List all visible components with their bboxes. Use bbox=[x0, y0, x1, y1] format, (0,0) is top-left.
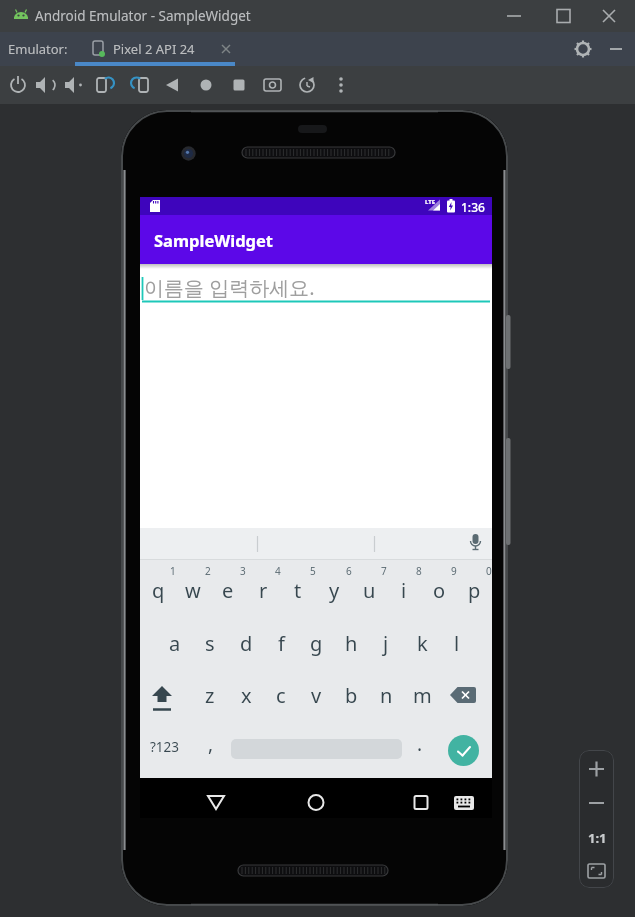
button[interactable] bbox=[260, 66, 292, 104]
staticText: u bbox=[363, 577, 376, 604]
button[interactable]: g bbox=[299, 628, 333, 658]
staticText: m bbox=[413, 682, 432, 709]
button[interactable] bbox=[448, 735, 479, 766]
button[interactable] bbox=[579, 855, 614, 888]
staticText: k bbox=[417, 630, 428, 657]
button[interactable]: d bbox=[229, 628, 263, 658]
button[interactable]: k bbox=[405, 628, 439, 658]
staticText: s bbox=[205, 630, 215, 657]
button[interactable] bbox=[200, 787, 232, 815]
staticText: q bbox=[152, 577, 165, 604]
staticText: 6 bbox=[346, 564, 352, 578]
staticText: 3 bbox=[240, 564, 246, 578]
button[interactable] bbox=[460, 528, 492, 560]
button[interactable]: p bbox=[457, 575, 491, 605]
staticText: f bbox=[278, 630, 285, 657]
button[interactable] bbox=[579, 750, 614, 785]
staticText: Emulator: bbox=[8, 40, 68, 58]
button[interactable]: m bbox=[405, 680, 439, 710]
button[interactable]: w bbox=[176, 575, 210, 605]
button[interactable]: z bbox=[193, 680, 227, 710]
button[interactable]: x bbox=[229, 680, 263, 710]
button[interactable]: f bbox=[264, 628, 298, 658]
staticText: r bbox=[259, 577, 268, 604]
button[interactable] bbox=[449, 686, 489, 712]
staticText: 이름을 입력하세요. bbox=[144, 274, 315, 301]
button[interactable] bbox=[300, 787, 332, 815]
staticText: 9 bbox=[451, 564, 457, 578]
staticText: 0 bbox=[486, 564, 492, 578]
button[interactable] bbox=[570, 32, 635, 66]
button[interactable]: Pixel 2 API 24 bbox=[75, 32, 235, 66]
button[interactable]: s bbox=[193, 628, 227, 658]
button[interactable]: , bbox=[194, 729, 228, 759]
staticText: e bbox=[222, 577, 234, 604]
staticText: LTE bbox=[425, 198, 436, 206]
staticText: j bbox=[383, 630, 389, 657]
button[interactable]: 이름을 입력하세요. bbox=[140, 264, 492, 528]
button[interactable]: i bbox=[387, 575, 421, 605]
button[interactable]: y bbox=[317, 575, 351, 605]
button[interactable] bbox=[36, 66, 68, 104]
staticText: h bbox=[345, 630, 358, 657]
button[interactable]: j bbox=[369, 628, 403, 658]
button[interactable] bbox=[132, 66, 164, 104]
button[interactable] bbox=[100, 66, 132, 104]
button[interactable]: n bbox=[369, 680, 403, 710]
staticText: c bbox=[276, 682, 286, 709]
button[interactable]: c bbox=[264, 680, 298, 710]
button[interactable] bbox=[228, 66, 260, 104]
staticText: v bbox=[311, 682, 322, 709]
staticText: t bbox=[294, 577, 302, 604]
button[interactable]: t bbox=[281, 575, 315, 605]
staticText: d bbox=[240, 630, 253, 657]
button[interactable] bbox=[164, 66, 196, 104]
button[interactable]: a bbox=[158, 628, 192, 658]
button[interactable] bbox=[292, 66, 324, 104]
button[interactable] bbox=[448, 787, 480, 815]
button[interactable] bbox=[480, 0, 635, 32]
button[interactable]: e bbox=[211, 575, 245, 605]
staticText: Pixel 2 API 24 bbox=[113, 40, 195, 58]
button[interactable] bbox=[579, 820, 614, 855]
staticText: 1:1 bbox=[588, 829, 607, 847]
button[interactable]: v bbox=[299, 680, 333, 710]
button[interactable]: ?123 bbox=[145, 734, 185, 760]
button[interactable] bbox=[579, 785, 614, 820]
button[interactable]: l bbox=[440, 628, 474, 658]
staticText: 1 bbox=[170, 564, 176, 578]
staticText: , bbox=[208, 731, 214, 757]
staticText: Android Emulator - SampleWidget bbox=[35, 7, 251, 25]
staticText: 4 bbox=[275, 564, 281, 578]
button[interactable] bbox=[68, 66, 100, 104]
staticText: . bbox=[417, 731, 423, 757]
staticText: w bbox=[185, 577, 201, 604]
staticText: x bbox=[241, 682, 252, 709]
button[interactable] bbox=[324, 66, 356, 104]
staticText: 1:36 bbox=[461, 199, 485, 215]
button[interactable] bbox=[148, 684, 178, 716]
staticText: g bbox=[310, 630, 323, 657]
staticText: z bbox=[205, 682, 215, 709]
staticText: b bbox=[345, 682, 358, 709]
button[interactable] bbox=[196, 66, 228, 104]
button[interactable]: r bbox=[246, 575, 280, 605]
button[interactable]: b bbox=[334, 680, 368, 710]
staticText: l bbox=[454, 630, 460, 657]
button[interactable]: . bbox=[403, 729, 437, 759]
staticText: 8 bbox=[416, 564, 422, 578]
button[interactable] bbox=[4, 66, 36, 104]
staticText: ?123 bbox=[150, 738, 180, 756]
staticText: 5 bbox=[310, 564, 316, 578]
button[interactable]: h bbox=[334, 628, 368, 658]
button[interactable]: o bbox=[422, 575, 456, 605]
button[interactable] bbox=[405, 787, 437, 815]
staticText: 7 bbox=[381, 564, 387, 578]
button[interactable]: u bbox=[352, 575, 386, 605]
staticText: a bbox=[169, 630, 181, 657]
staticText: i bbox=[401, 577, 407, 604]
staticText: 2 bbox=[205, 564, 211, 578]
button[interactable]: q bbox=[141, 575, 175, 605]
staticText: n bbox=[380, 682, 393, 709]
